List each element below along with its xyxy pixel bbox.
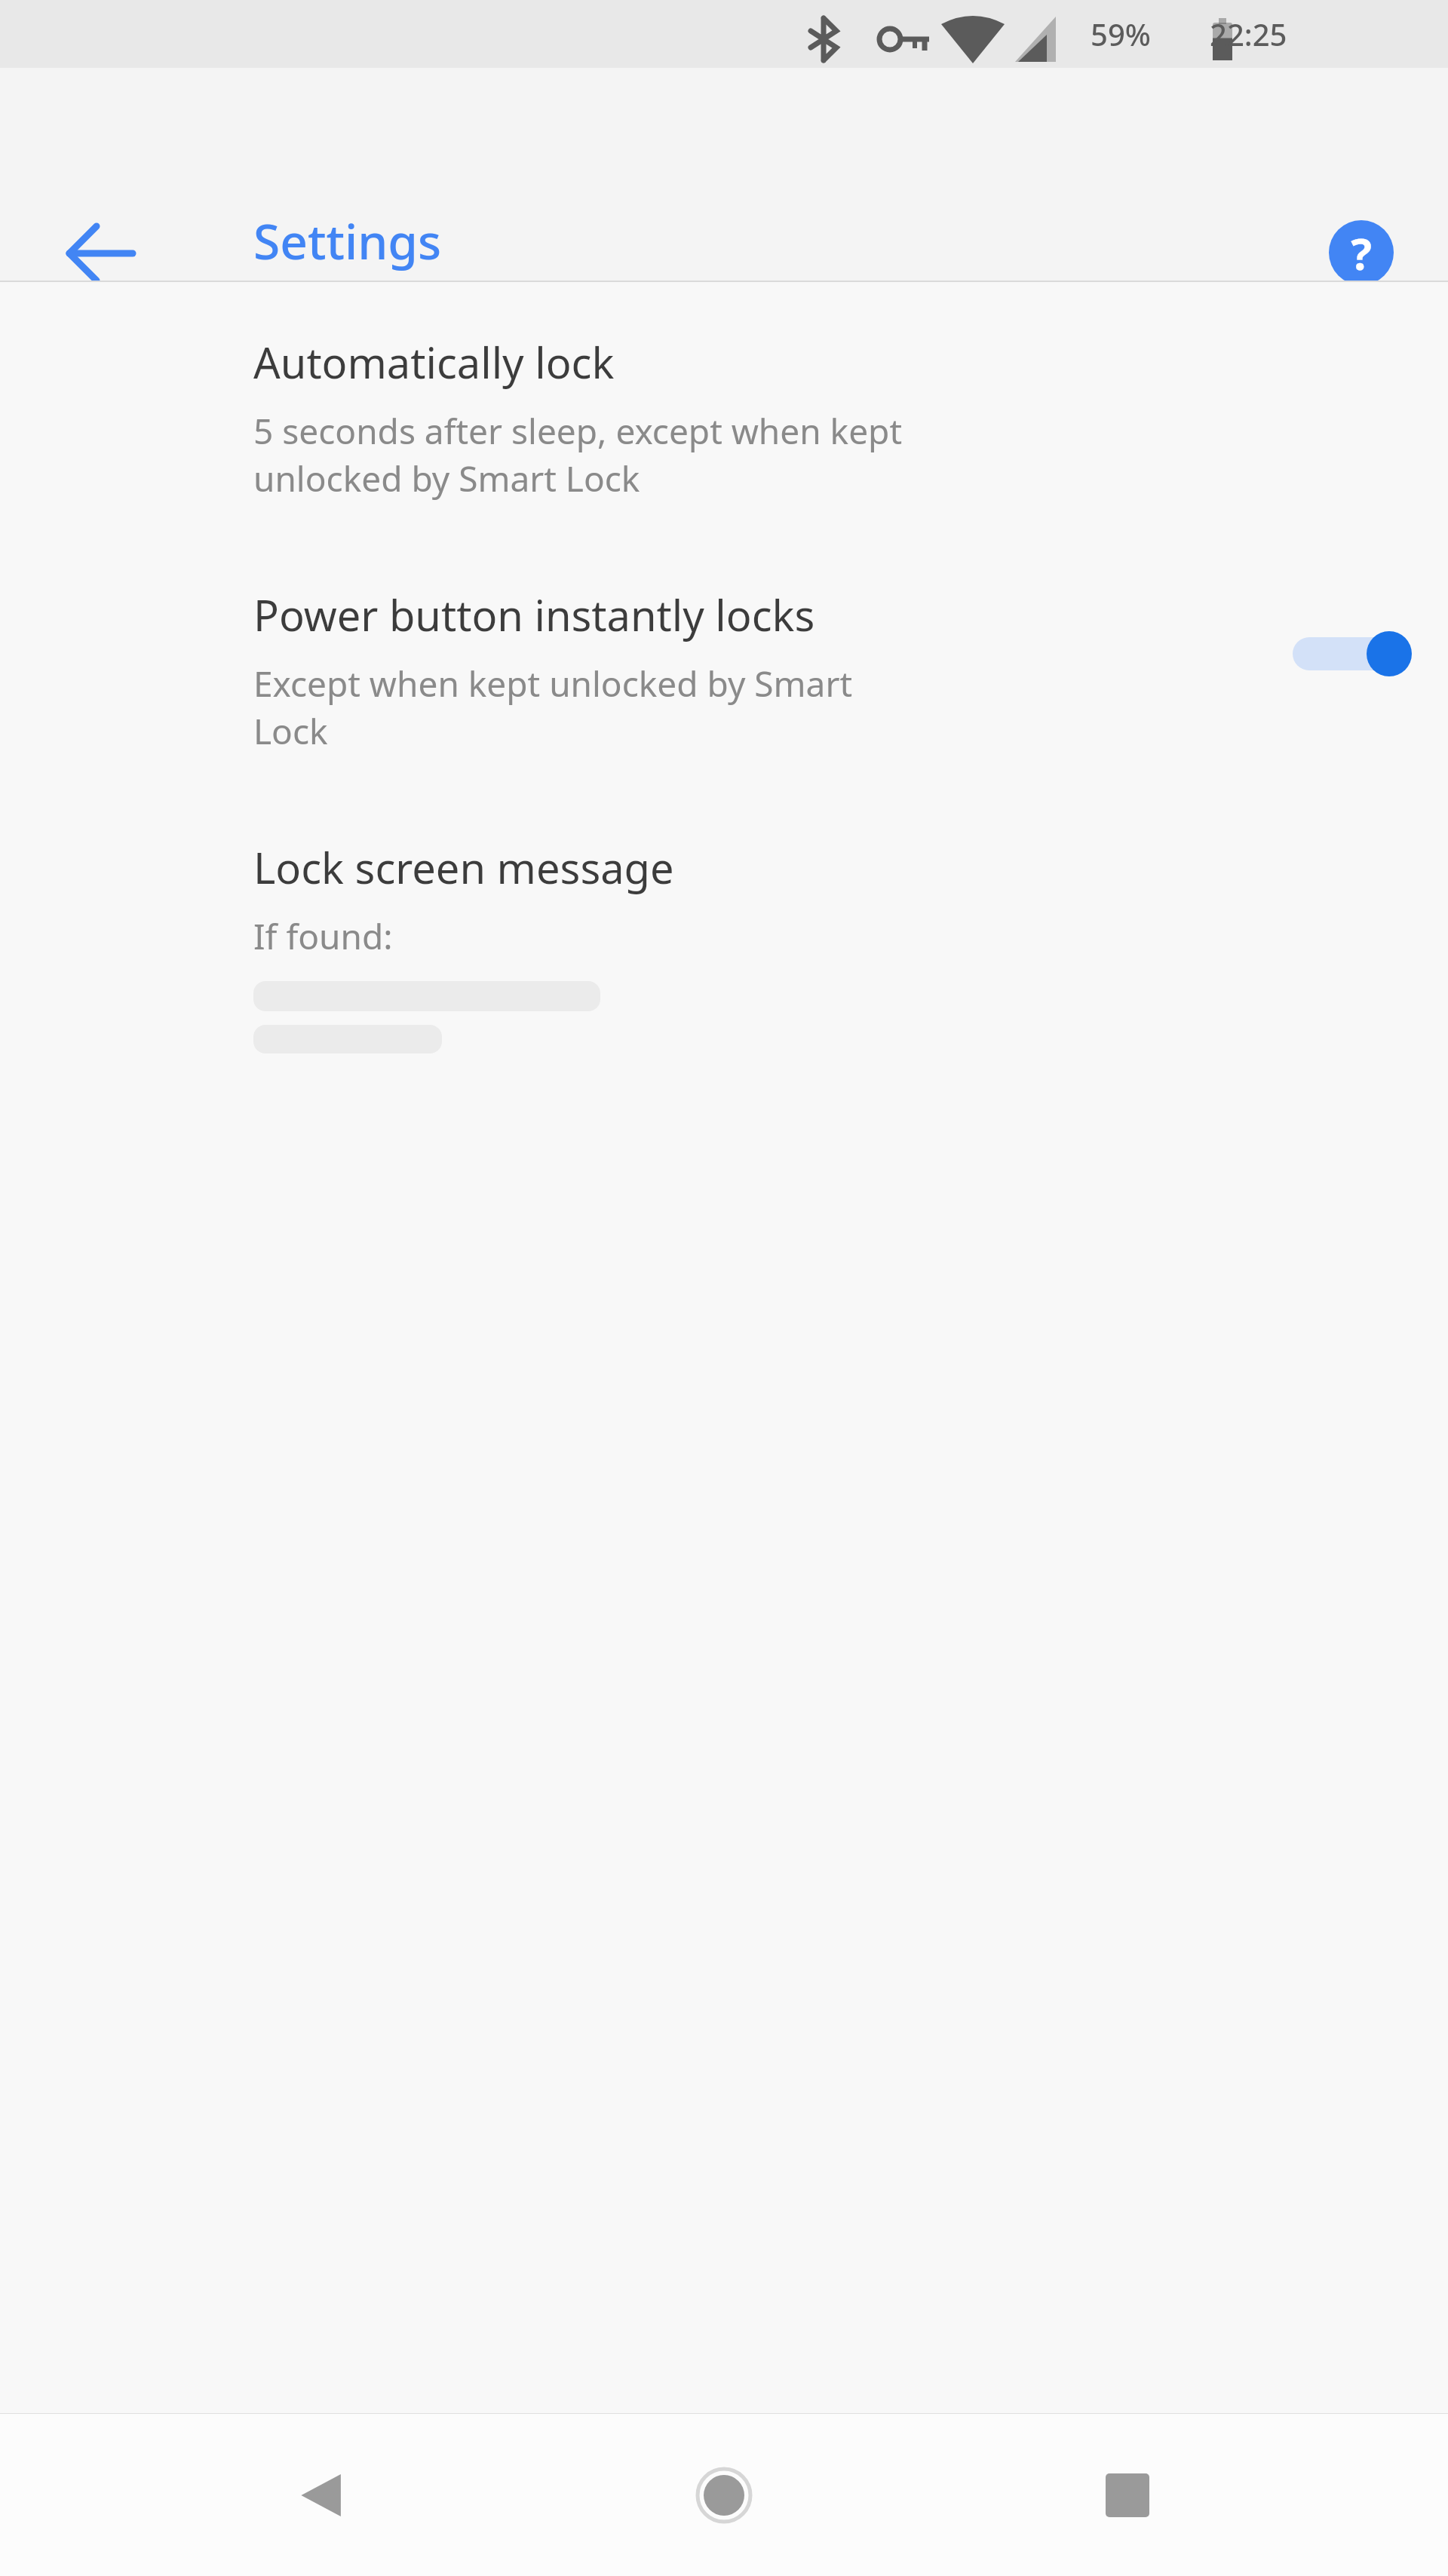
staticText: If found:	[253, 912, 393, 960]
staticText: Settings	[253, 208, 442, 274]
button[interactable]: Recent apps	[1056, 2435, 1199, 2556]
button[interactable]: Lock screen message	[0, 780, 1448, 1091]
staticText: Automatically lock	[253, 333, 615, 391]
staticText: Power button instantly locks	[253, 586, 815, 643]
staticText: 59%	[1091, 14, 1151, 54]
staticText: 22:25	[1210, 14, 1287, 54]
staticText: ?	[1351, 223, 1372, 283]
staticText: Lock screen message	[253, 839, 674, 896]
staticText: 5 seconds after sleep, except when kept …	[253, 407, 903, 501]
button[interactable]: Back	[249, 2435, 392, 2556]
button[interactable]: Power button instantly locks	[0, 527, 1448, 780]
button[interactable]: Help	[1294, 186, 1428, 320]
button[interactable]: Home	[652, 2435, 796, 2556]
button[interactable]: Back	[45, 198, 157, 309]
button[interactable]: Automatically lock	[0, 282, 1448, 527]
staticText: Except when kept unlocked by Smart Lock	[253, 660, 853, 754]
button[interactable]: Power button instantly locks toggle	[1252, 586, 1448, 722]
